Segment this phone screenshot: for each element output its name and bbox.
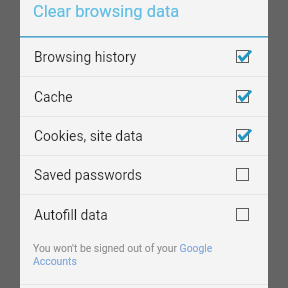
button[interactable]: Autofill data — [20, 195, 268, 234]
staticText: Cache — [34, 89, 73, 105]
staticText: You won't be signed out of your Google A… — [33, 242, 255, 267]
staticText: Clear browsing data — [33, 2, 180, 21]
button[interactable]: Cache — [20, 77, 268, 116]
button[interactable]: Cookies, site data — [20, 117, 268, 155]
staticText: Cookies, site data — [34, 128, 143, 144]
staticText: Saved passwords — [34, 167, 142, 183]
button[interactable]: Browsing history — [20, 38, 268, 76]
staticText: Autofill data — [34, 207, 108, 223]
button[interactable]: Saved passwords — [20, 156, 268, 194]
staticText: Browsing history — [34, 49, 137, 65]
